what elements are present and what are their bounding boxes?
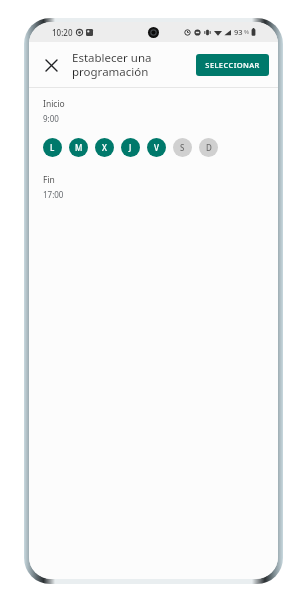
- staticText: 17:00: [43, 189, 64, 200]
- button[interactable]: Cerrar: [38, 52, 64, 78]
- staticText: M: [75, 142, 83, 153]
- staticText: 10:20: [52, 27, 73, 38]
- staticText: 93: [234, 27, 243, 37]
- staticText: %: [244, 28, 249, 36]
- staticText: S: [180, 142, 185, 153]
- button[interactable]: Fin: [43, 174, 264, 200]
- staticText: SELECCIONAR: [205, 60, 260, 70]
- staticText: Establecer una programación: [72, 50, 192, 79]
- button[interactable]: X: [95, 138, 114, 157]
- button[interactable]: J: [121, 138, 140, 157]
- staticText: L: [50, 142, 55, 153]
- button[interactable]: Inicio: [43, 98, 264, 124]
- staticText: Inicio: [43, 98, 65, 110]
- staticText: X: [102, 142, 107, 153]
- button[interactable]: SELECCIONAR: [196, 54, 269, 76]
- button[interactable]: M: [69, 138, 88, 157]
- staticText: J: [129, 142, 132, 153]
- staticText: D: [206, 142, 212, 153]
- button[interactable]: D: [199, 138, 218, 157]
- staticText: 9:00: [43, 113, 59, 124]
- button[interactable]: S: [173, 138, 192, 157]
- staticText: Fin: [43, 174, 55, 186]
- staticText: V: [154, 142, 159, 153]
- button[interactable]: V: [147, 138, 166, 157]
- button[interactable]: L: [43, 138, 62, 157]
